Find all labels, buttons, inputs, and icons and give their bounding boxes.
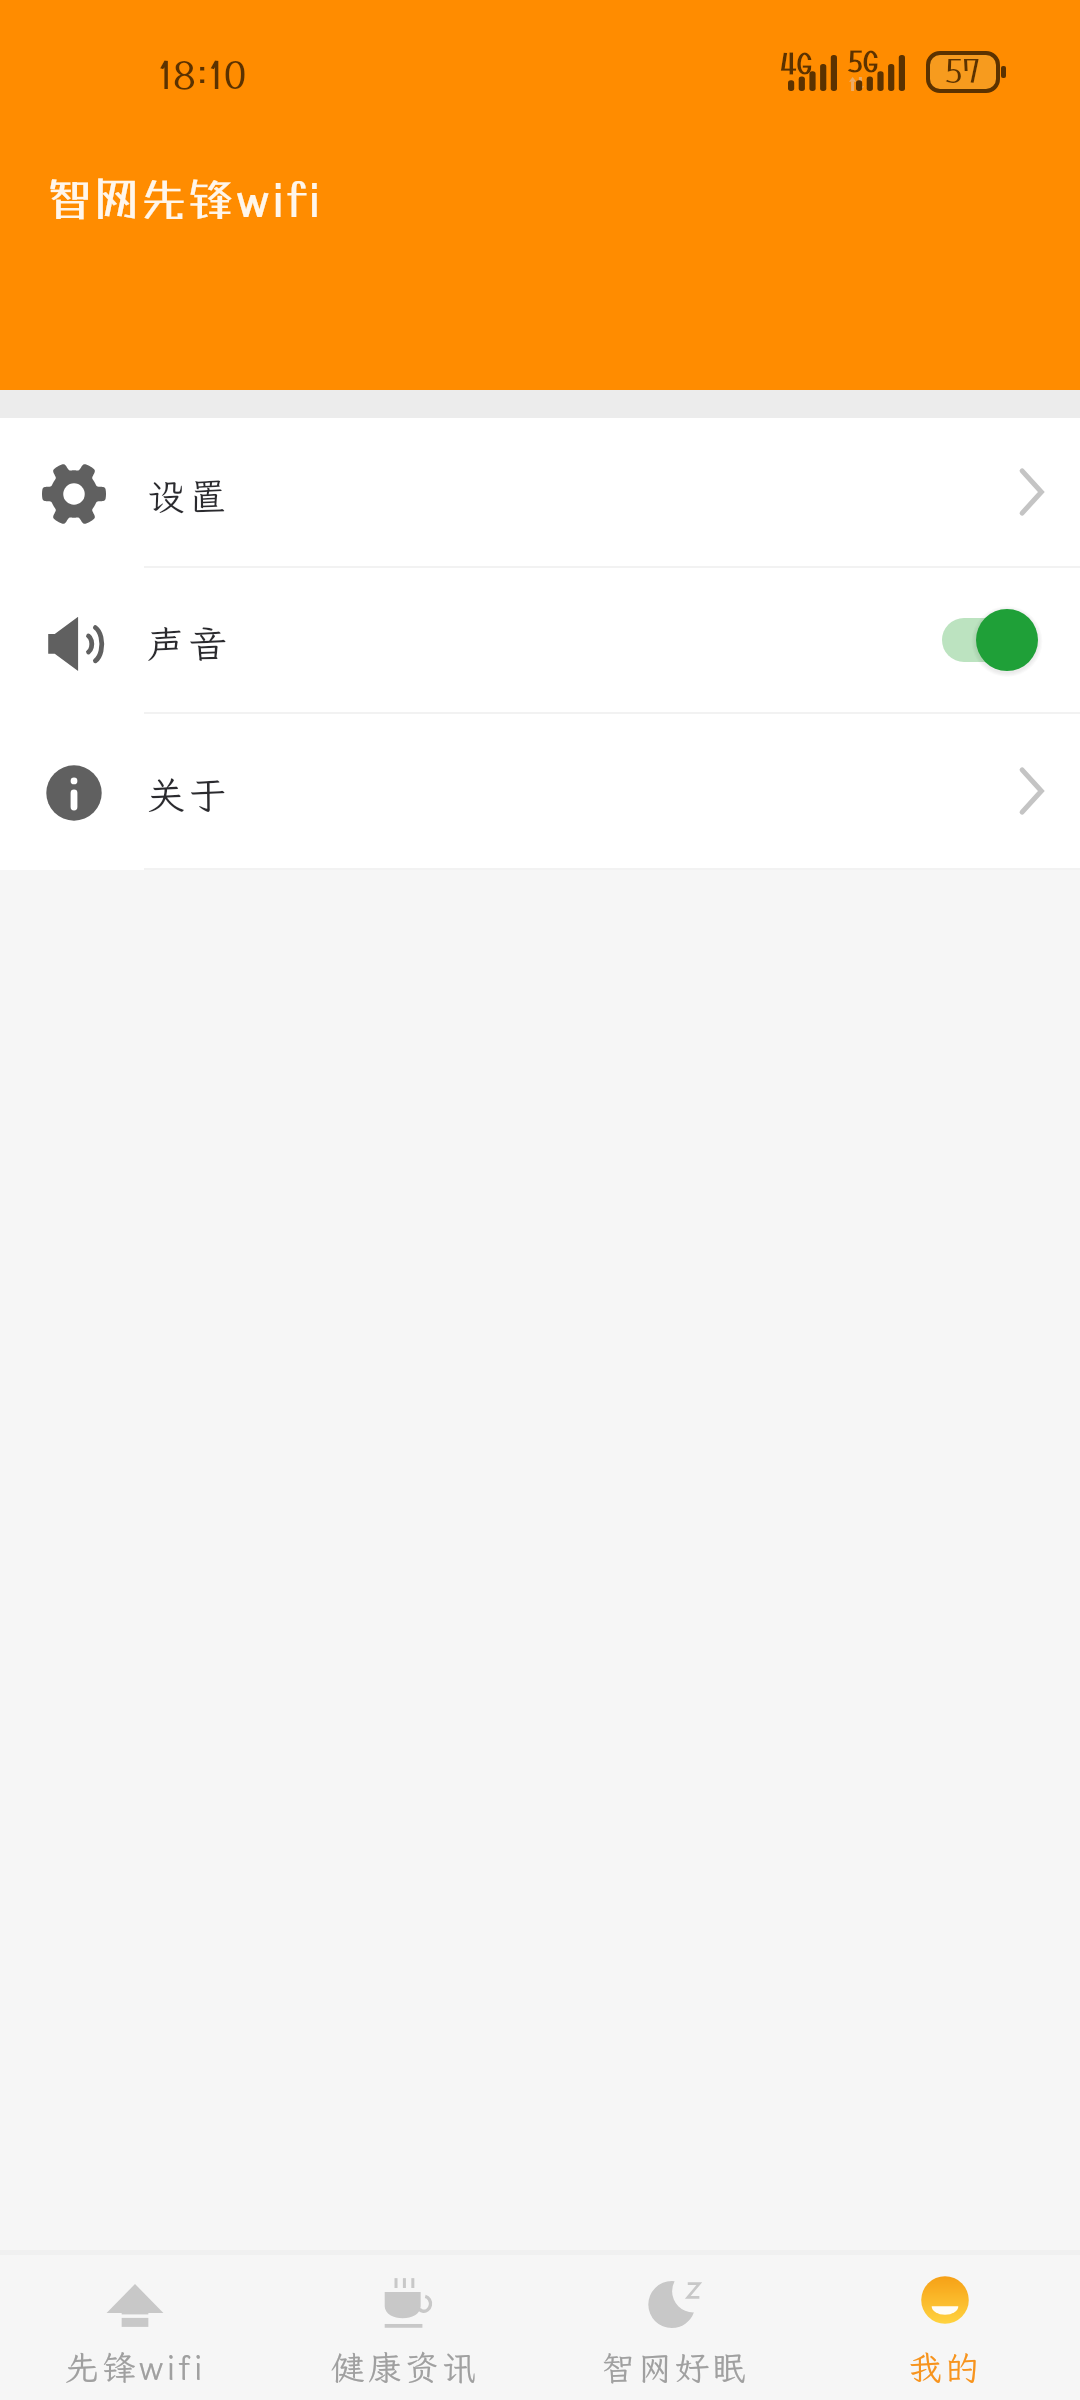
- staticText: 我的: [908, 2345, 982, 2390]
- staticText: 智网好眠: [601, 2345, 749, 2390]
- staticText: 声音: [147, 619, 231, 669]
- button[interactable]: 健康资讯: [270, 2255, 540, 2400]
- staticText: 4G: [780, 47, 813, 79]
- staticText: 健康资讯: [331, 2345, 479, 2390]
- staticText: 57: [945, 52, 981, 90]
- button[interactable]: 智网好眠: [540, 2255, 810, 2400]
- staticText: 设置: [147, 471, 231, 521]
- other: 打开: [987, 452, 1045, 532]
- staticText: 先锋wifi: [65, 2345, 206, 2390]
- button[interactable]: 先锋wifi: [0, 2255, 270, 2400]
- button[interactable]: 我的: [810, 2255, 1080, 2400]
- button[interactable]: 设置: [0, 418, 1080, 566]
- staticText: 5G: [848, 45, 879, 77]
- staticText: 关于: [147, 770, 231, 820]
- button[interactable]: 声音开关: [942, 607, 1046, 673]
- button[interactable]: 关于: [0, 714, 1080, 868]
- button[interactable]: 声音: [0, 568, 1080, 712]
- other: 打开: [987, 751, 1045, 831]
- staticText: 18:10: [158, 52, 247, 97]
- staticText: 智网先锋wifi: [46, 172, 323, 226]
